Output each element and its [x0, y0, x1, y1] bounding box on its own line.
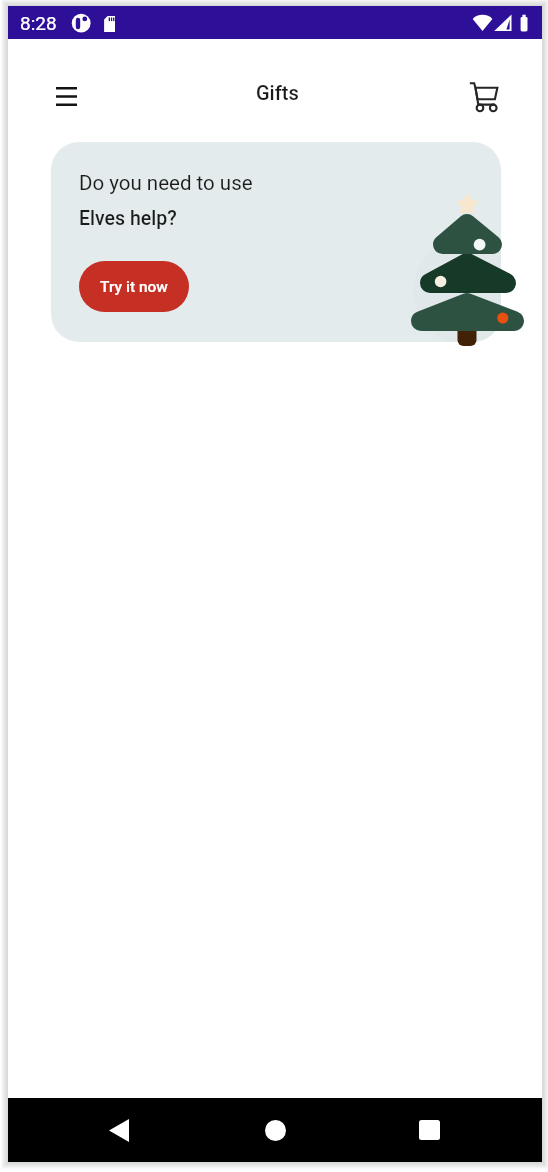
button[interactable]: Recent apps — [397, 1098, 461, 1162]
staticText: Try it now — [100, 278, 168, 296]
button[interactable]: Menu — [40, 70, 92, 122]
staticText: Do you need to use — [79, 171, 253, 195]
button[interactable]: Back — [87, 1098, 151, 1162]
button[interactable]: Shopping cart — [457, 70, 509, 122]
button[interactable]: Home — [243, 1098, 307, 1162]
button[interactable]: Try it now — [79, 261, 189, 312]
staticText: Gifts — [256, 81, 299, 104]
staticText: Elves help? — [79, 207, 177, 230]
staticText: 8:28 — [20, 12, 57, 34]
